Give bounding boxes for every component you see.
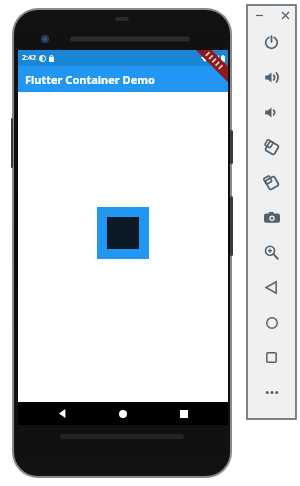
staticText: 2:42: [22, 53, 36, 63]
button[interactable]: Home: [106, 402, 140, 425]
button[interactable]: Recent apps: [167, 402, 201, 425]
button[interactable]: Home: [247, 305, 296, 340]
button[interactable]: [97, 207, 149, 259]
button[interactable]: Recent apps: [247, 340, 296, 375]
button[interactable]: Close: [277, 7, 293, 23]
button[interactable]: Rotate left: [247, 130, 296, 165]
button[interactable]: Back: [45, 402, 79, 425]
staticText: Flutter Container Demo: [25, 72, 155, 87]
button[interactable]: Back: [247, 270, 296, 305]
button[interactable]: Minimize: [251, 7, 267, 23]
button[interactable]: Power: [247, 25, 296, 60]
button[interactable]: More: [247, 375, 296, 410]
button[interactable]: Take screenshot: [247, 200, 296, 235]
button[interactable]: Volume down: [247, 95, 296, 130]
button[interactable]: Volume up: [247, 60, 296, 95]
button[interactable]: Rotate right: [247, 165, 296, 200]
button[interactable]: Zoom: [247, 235, 296, 270]
